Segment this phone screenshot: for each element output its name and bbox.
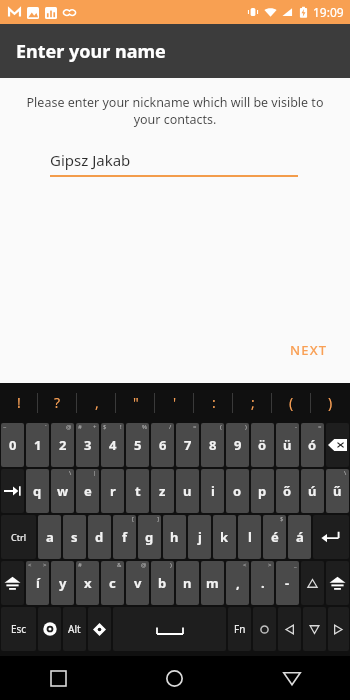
button[interactable]: & (101, 561, 124, 605)
button[interactable]: Fn (228, 607, 251, 651)
staticText: ) (245, 423, 247, 431)
button[interactable]: % (126, 423, 149, 467)
button[interactable]: h (163, 515, 186, 559)
button[interactable]: d (88, 515, 111, 559)
button[interactable]: Symbols (88, 607, 111, 651)
button[interactable]: / (151, 423, 174, 467)
button[interactable]: > (251, 561, 274, 605)
button[interactable]: ) (311, 383, 350, 422)
button[interactable]: á (288, 515, 311, 559)
button[interactable]: \ (51, 469, 74, 513)
staticText: \ (344, 469, 347, 477)
button[interactable]: ) (226, 423, 249, 467)
staticText: d (95, 528, 104, 546)
staticText: > (268, 561, 272, 569)
button[interactable]: ` (26, 423, 49, 467)
button[interactable]: j (188, 515, 211, 559)
button[interactable]: ) (151, 561, 174, 605)
button[interactable]: ő (276, 469, 299, 513)
button[interactable]: @ (51, 423, 74, 467)
button[interactable]: Back (233, 656, 350, 700)
button[interactable]: Space (113, 607, 226, 651)
button[interactable]: ] (138, 515, 161, 559)
staticText: k (220, 528, 229, 546)
button[interactable]: Backspace (326, 423, 349, 467)
button[interactable]: ! (0, 383, 38, 422)
staticText: 3 (84, 436, 92, 454)
button[interactable]: ' (155, 383, 194, 422)
button[interactable]: \ (326, 469, 349, 513)
staticText: Gipsz Jakab (50, 150, 131, 170)
staticText: . (261, 574, 265, 592)
staticText: i (211, 482, 215, 500)
button[interactable]: m (201, 561, 224, 605)
button[interactable]: [ (113, 515, 136, 559)
button[interactable]: Shift (326, 561, 349, 605)
button[interactable]: ö (251, 423, 274, 467)
button[interactable]: : (194, 383, 233, 422)
button[interactable]: r (101, 469, 124, 513)
button[interactable]: ; (233, 383, 272, 422)
button[interactable]: < (226, 561, 249, 605)
button[interactable]: u (176, 469, 199, 513)
staticText: ) (170, 561, 172, 569)
button[interactable]: $ (101, 423, 124, 467)
staticText: ! (17, 393, 21, 412)
button[interactable]: - (276, 423, 299, 467)
button[interactable]: Voice input (38, 607, 61, 651)
staticText: Alt (68, 622, 81, 636)
staticText: 0 (9, 436, 17, 454)
button[interactable]: i (201, 469, 224, 513)
button[interactable]: = (301, 423, 324, 467)
staticText: í (36, 574, 40, 592)
button[interactable]: Recent apps (0, 656, 116, 700)
button[interactable]: Enter (313, 515, 349, 559)
button[interactable]: < (26, 561, 49, 605)
button[interactable]: _ (276, 561, 299, 605)
button[interactable]: ~ (1, 423, 24, 467)
button[interactable]: k (213, 515, 236, 559)
button[interactable]: o (226, 469, 249, 513)
button[interactable]: Esc (1, 607, 36, 651)
staticText: , (236, 574, 240, 592)
button[interactable]: Up (301, 561, 324, 605)
button[interactable]: , (77, 383, 116, 422)
button[interactable]: Tab (1, 469, 24, 513)
staticText: ő (283, 482, 292, 500)
button[interactable]: a (38, 515, 61, 559)
button[interactable]: z (151, 469, 174, 513)
button[interactable]: Alt (63, 607, 86, 651)
button[interactable]: NEXT (282, 335, 336, 365)
button[interactable]: $ (263, 515, 286, 559)
button[interactable]: t (126, 469, 149, 513)
button[interactable]: Home (116, 656, 233, 700)
button[interactable]: l (238, 515, 261, 559)
button[interactable]: Ctrl (1, 515, 36, 559)
button[interactable]: ú (301, 469, 324, 513)
button[interactable]: y (51, 561, 74, 605)
button[interactable]: " (116, 383, 155, 422)
button[interactable]: p (251, 469, 274, 513)
button[interactable]: # (76, 561, 99, 605)
button[interactable]: | (76, 469, 99, 513)
button[interactable]: Shift (1, 561, 24, 605)
button[interactable]: Settings (253, 607, 276, 651)
staticText: v (134, 574, 142, 592)
staticText: Enter your name (16, 39, 166, 64)
button[interactable]: q (26, 469, 49, 513)
button[interactable]: Gipsz Jakab (50, 150, 298, 177)
button[interactable]: Down (303, 607, 326, 651)
button[interactable]: s (63, 515, 86, 559)
button[interactable]: = (176, 423, 199, 467)
button[interactable]: Left (278, 607, 301, 651)
button[interactable]: n (176, 561, 199, 605)
staticText: & (117, 561, 122, 569)
button[interactable]: @ (126, 561, 149, 605)
staticText: # (78, 561, 82, 569)
button[interactable]: # (76, 423, 99, 467)
button[interactable]: ( (272, 383, 311, 422)
button[interactable]: ( (201, 423, 224, 467)
button[interactable]: Right (328, 607, 349, 651)
staticText: ` (45, 423, 47, 431)
button[interactable]: ? (38, 383, 77, 422)
